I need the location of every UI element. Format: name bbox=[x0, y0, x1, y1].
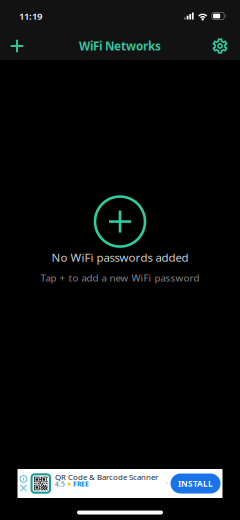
button[interactable]: Close ad bbox=[20, 484, 27, 491]
staticText: FREE bbox=[73, 479, 89, 489]
staticText: No WiFi passwords added bbox=[51, 250, 188, 265]
staticText: QR Code & Barcode Scanner bbox=[55, 472, 158, 482]
button[interactable]: Add WiFi password bbox=[94, 196, 146, 248]
staticText: 11:19 bbox=[19, 9, 42, 23]
staticText: · bbox=[165, 478, 167, 489]
button[interactable]: Settings bbox=[203, 32, 237, 60]
button[interactable]: Ad information bbox=[20, 475, 27, 482]
button[interactable]: Add WiFi password bbox=[0, 32, 34, 60]
staticText: ★ bbox=[66, 480, 71, 487]
staticText: Tap + to add a new WiFi password bbox=[40, 271, 199, 284]
staticText: WiFi Networks bbox=[79, 38, 161, 54]
staticText: INSTALL bbox=[178, 478, 213, 489]
staticText: 4.5 bbox=[55, 479, 65, 489]
button[interactable]: INSTALL bbox=[170, 473, 220, 493]
